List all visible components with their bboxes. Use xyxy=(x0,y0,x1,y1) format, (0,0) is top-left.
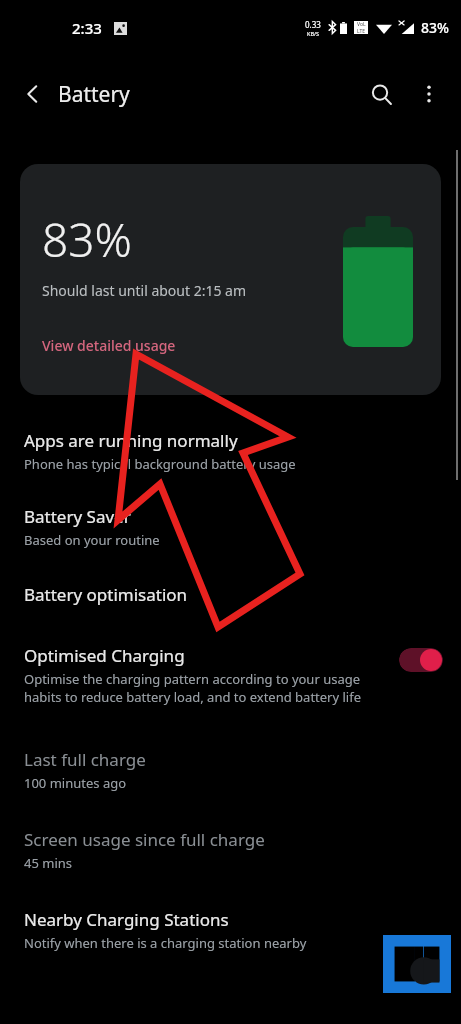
staticText: Screen usage since full charge xyxy=(24,828,265,851)
button[interactable]: Search xyxy=(357,70,405,118)
staticText: 83% xyxy=(421,18,449,37)
staticText: LTE xyxy=(357,28,366,34)
button[interactable]: Back xyxy=(10,71,56,117)
staticText: Apps are running normally xyxy=(24,429,238,452)
button[interactable]: Nearby Charging Stations xyxy=(0,904,461,962)
staticText: Optimise the charging pattern according … xyxy=(24,670,389,706)
staticText: VoL xyxy=(357,21,366,28)
button[interactable]: Optimised Charging xyxy=(0,638,461,718)
staticText: Last full charge xyxy=(24,748,146,771)
staticText: 0.33 xyxy=(305,19,321,30)
button[interactable]: Last full charge xyxy=(0,744,461,804)
staticText: Battery xyxy=(58,80,130,109)
staticText: Should last until about 2:15 am xyxy=(42,281,247,300)
staticText: Battery Saver xyxy=(24,505,131,528)
staticText: Battery optimisation xyxy=(24,583,188,606)
staticText: 2:33 xyxy=(72,18,102,38)
button[interactable]: Apps are running normally xyxy=(0,419,461,485)
button[interactable]: Screen usage since full charge xyxy=(0,824,461,884)
staticText: Based on your routine xyxy=(24,531,160,549)
button[interactable]: More options xyxy=(405,70,453,118)
staticText: Nearby Charging Stations xyxy=(24,908,229,931)
staticText: Notify when there is a charging station … xyxy=(24,934,307,952)
button[interactable]: 83% xyxy=(20,164,441,395)
button[interactable]: Optimised Charging toggle xyxy=(399,648,443,672)
staticText: 83% xyxy=(42,208,132,271)
staticText: Optimised Charging xyxy=(24,644,185,667)
button[interactable]: Battery Saver xyxy=(0,497,461,561)
staticText: KB/S xyxy=(307,30,320,37)
staticText: Phone has typical background battery usa… xyxy=(24,455,296,473)
staticText: 100 minutes ago xyxy=(24,774,127,792)
staticText: 45 mins xyxy=(24,854,73,872)
button[interactable]: Battery optimisation xyxy=(0,577,461,620)
button[interactable]: View detailed usage xyxy=(40,334,178,357)
staticText: View detailed usage xyxy=(42,336,176,355)
